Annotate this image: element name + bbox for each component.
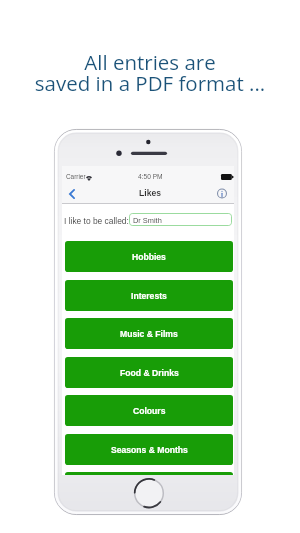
button[interactable]: Sports	[65, 472, 233, 475]
button[interactable]: Music & Films	[65, 318, 233, 349]
button[interactable]: Hobbies	[65, 241, 233, 272]
staticText: Dr Smith	[133, 216, 162, 224]
staticText: I like to be called:	[64, 216, 129, 225]
staticText: Likes	[139, 188, 161, 198]
staticText: All entries are saved in a PDF format ..…	[0, 48, 300, 97]
staticText: Interests	[131, 291, 167, 301]
button[interactable]: Food & Drinks	[65, 357, 233, 388]
staticText: Music & Films	[120, 329, 178, 339]
button[interactable]: Seasons & Months	[65, 434, 233, 465]
staticText: Hobbies	[132, 252, 166, 262]
staticText: Seasons & Months	[111, 445, 188, 455]
button[interactable]: Interests	[65, 280, 233, 311]
staticText: 4:50 PM	[138, 173, 163, 180]
staticText: Colours	[133, 406, 166, 416]
button[interactable]: Back	[64, 184, 80, 204]
button[interactable]: Colours	[65, 395, 233, 426]
staticText: Food & Drinks	[120, 368, 179, 378]
button[interactable]: Dr Smith	[129, 213, 232, 226]
button[interactable]: Info	[214, 184, 230, 204]
staticText: Carrier	[66, 173, 86, 180]
